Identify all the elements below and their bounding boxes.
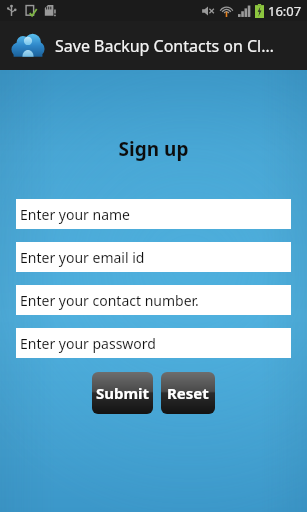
- other: App icon: [10, 28, 46, 64]
- button[interactable]: Enter your contact number.: [16, 285, 291, 315]
- staticText: 16:07: [268, 2, 302, 20]
- button[interactable]: Enter your email id: [16, 242, 291, 272]
- staticText: Save Backup Contacts on Cl…: [55, 35, 274, 57]
- button[interactable]: Enter your name: [16, 199, 291, 229]
- staticText: Submit: [96, 383, 150, 403]
- staticText: Enter your email id: [20, 248, 145, 267]
- button[interactable]: Submit: [92, 372, 153, 414]
- staticText: Enter your contact number.: [20, 291, 199, 310]
- staticText: Enter your password: [20, 334, 156, 353]
- button[interactable]: Enter your password: [16, 328, 291, 358]
- staticText: Reset: [167, 383, 209, 403]
- staticText: Sign up: [0, 136, 307, 162]
- button[interactable]: Reset: [161, 372, 215, 414]
- staticText: Enter your name: [20, 205, 130, 224]
